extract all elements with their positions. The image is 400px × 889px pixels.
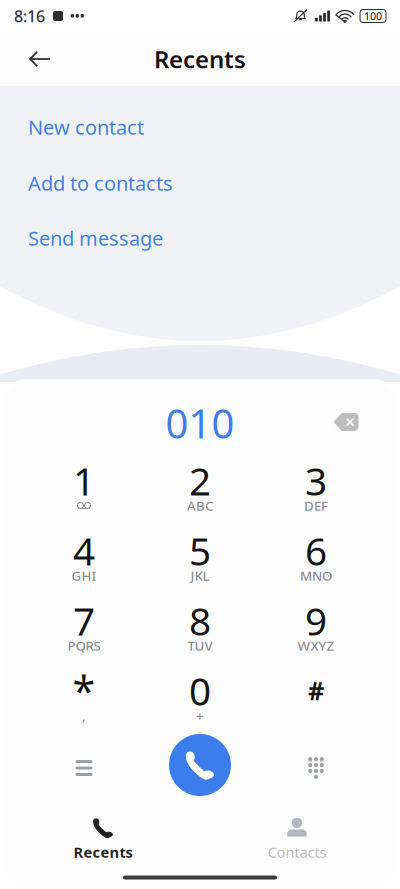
staticText: JKL — [190, 567, 209, 584]
button[interactable]: 5 — [142, 523, 258, 593]
staticText: , — [82, 707, 86, 724]
button[interactable]: # — [258, 663, 374, 733]
staticText: PQRS — [67, 637, 100, 654]
button[interactable]: 0 — [142, 663, 258, 733]
button[interactable]: Send message — [0, 225, 400, 251]
staticText: 8 — [189, 595, 211, 646]
staticText: + — [196, 707, 204, 724]
button[interactable]: Recents — [6, 803, 200, 866]
button[interactable]: Delete — [324, 394, 368, 438]
staticText: ••• — [70, 8, 85, 24]
staticText: Recents — [154, 43, 246, 75]
button[interactable]: More options — [26, 733, 142, 803]
staticText: 7 — [73, 595, 95, 646]
button[interactable]: 7 — [26, 593, 142, 663]
button[interactable]: 3 — [258, 453, 374, 523]
button[interactable]: 2 — [142, 453, 258, 523]
staticText: 8:16 — [14, 5, 45, 27]
staticText: Send message — [28, 225, 163, 251]
button[interactable]: 4 — [26, 523, 142, 593]
staticText: 3 — [305, 455, 327, 506]
staticText: 4 — [73, 525, 95, 576]
button[interactable]: * — [26, 663, 142, 733]
staticText: MNO — [300, 567, 332, 584]
staticText: New contact — [28, 114, 144, 140]
staticText: Recents — [73, 842, 132, 862]
staticText: 2 — [189, 455, 211, 506]
staticText: 100 — [364, 9, 382, 23]
button[interactable]: 8 — [142, 593, 258, 663]
button[interactable]: Back — [16, 35, 64, 83]
staticText: TUV — [187, 637, 212, 654]
staticText: WXYZ — [297, 637, 334, 654]
staticText: ABC — [187, 497, 213, 514]
staticText: GHI — [71, 567, 96, 584]
button[interactable]: 1 — [26, 453, 142, 523]
button[interactable]: Add to contacts — [0, 170, 400, 196]
staticText: Contacts — [267, 842, 326, 862]
staticText: Add to contacts — [28, 170, 173, 196]
button[interactable]: Keypad — [258, 733, 374, 803]
staticText: 1 — [73, 455, 95, 506]
staticText: 9 — [305, 595, 327, 646]
staticText: DEF — [304, 497, 328, 514]
staticText: # — [308, 674, 324, 707]
button[interactable]: 6 — [258, 523, 374, 593]
staticText: * — [72, 663, 95, 718]
staticText: 010 — [165, 396, 234, 449]
staticText: 5 — [189, 525, 211, 576]
staticText: 0 — [189, 665, 211, 716]
button[interactable]: 9 — [258, 593, 374, 663]
button[interactable]: New contact — [0, 114, 400, 140]
button[interactable]: Call — [142, 733, 258, 803]
button[interactable]: Contacts — [200, 803, 394, 866]
staticText: 6 — [305, 525, 327, 576]
